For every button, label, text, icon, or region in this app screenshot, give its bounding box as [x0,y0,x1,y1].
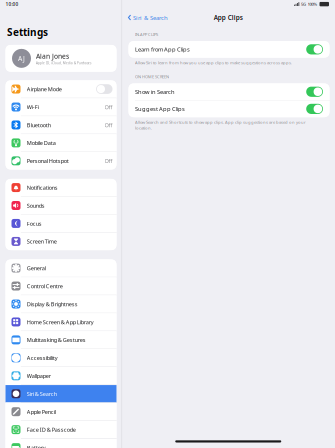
staticText: 10:00 [5,1,18,7]
staticText: Off [104,103,112,111]
button[interactable]: Siri & Search [121,13,174,23]
staticText: Siri & Search [27,390,57,397]
staticText: Apple ID, iCloud, Media & Purchases [36,61,91,65]
staticText: Alan Jones [36,52,69,61]
staticText: General [27,264,46,272]
button[interactable]: Wi-Fi [5,98,116,116]
button[interactable]: General [5,259,116,277]
staticText: Wi-Fi [27,103,39,111]
staticText: Battery [27,444,46,448]
button[interactable]: Screen Time [5,233,116,250]
staticText: Home Screen & App Library [27,318,94,326]
staticText: Bluetooth [27,121,51,129]
button[interactable]: Display & Brightness [5,295,116,313]
staticText: 100% [307,1,317,7]
staticText: Accessibility [27,354,58,362]
staticText: Learn from App Clips [135,45,190,53]
staticText: Settings [7,25,48,39]
button[interactable]: Airplane Mode [5,80,116,98]
staticText: Control Centre [27,282,63,290]
staticText: AJ [18,54,25,63]
staticText: Off [104,121,112,129]
button[interactable]: Personal Hotspot [5,152,116,170]
button[interactable]: Multitasking & Gestures [5,331,116,349]
button[interactable]: Mobile Data [5,134,116,152]
button[interactable]: Control Centre [5,277,116,295]
button[interactable]: Notifications [5,179,116,196]
button[interactable]: Siri & Search [5,385,116,402]
button[interactable]: Apple Pencil [5,403,116,420]
staticText: Personal Hotspot [27,157,69,165]
button[interactable]: Battery [5,439,116,448]
button[interactable]: Show in Search [128,83,329,100]
button[interactable]: AJ [5,45,116,72]
staticText: Wallpaper [27,372,51,380]
staticText: Display & Brightness [27,300,78,308]
staticText: Multitasking & Gestures [27,336,86,344]
button[interactable]: Face ID & Passcode [5,421,116,438]
staticText: 5G [301,1,306,7]
staticText: Show in Search [135,88,175,96]
staticText: Mobile Data [27,139,56,147]
staticText: Sounds [27,202,45,209]
button[interactable]: Bluetooth [5,116,116,134]
button[interactable]: Accessibility [5,349,116,367]
button[interactable]: Sounds [5,197,116,214]
staticText: Apple Pencil [27,408,56,415]
staticText: Suggest App Clips [135,105,185,113]
staticText: Allow Search and Shortcuts to show app c… [135,119,306,131]
staticText: Face ID & Passcode [27,426,76,433]
staticText: Focus [27,220,42,227]
staticText: IN-APP CLIPS [135,32,158,37]
staticText: App Clips [214,13,243,22]
button[interactable]: Suggest App Clips [128,101,329,117]
button[interactable]: Focus [5,215,116,232]
staticText: ON HOME SCREEN [135,74,169,79]
staticText: Screen Time [27,238,57,245]
staticText: Allow Siri to learn from how you use app… [135,60,292,65]
button[interactable]: Wallpaper [5,367,116,384]
button[interactable]: Home Screen & App Library [5,313,116,331]
staticText: Siri & Search [133,14,168,22]
button[interactable]: Learn from App Clips [128,41,329,58]
staticText: Off [104,157,112,165]
staticText: Notifications [27,184,58,191]
staticText: Airplane Mode [27,85,62,93]
